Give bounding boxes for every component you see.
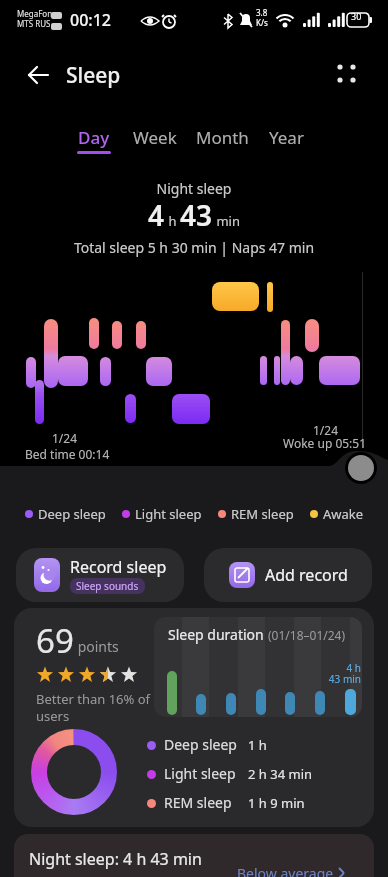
staticText: Record sleep	[70, 556, 167, 578]
staticText: 4	[148, 196, 165, 234]
staticText: Light sleep	[135, 505, 202, 523]
staticText: Night sleep	[0, 179, 388, 198]
staticText: REM sleep	[231, 505, 294, 523]
staticText: Better than 16% of users	[36, 690, 151, 725]
staticText: points	[74, 637, 119, 656]
button[interactable]: Add record	[204, 548, 372, 602]
staticText: 30	[351, 10, 362, 22]
button[interactable]: Day	[78, 126, 110, 149]
button[interactable]: Year	[269, 126, 304, 149]
button[interactable]: Week	[133, 126, 177, 149]
staticText: 69	[36, 618, 74, 663]
staticText: 3.8	[256, 7, 268, 18]
staticText: Below average	[237, 864, 334, 877]
staticText: (01/18–01/24)	[268, 627, 346, 643]
staticText: Light sleep	[164, 764, 236, 783]
staticText: MTS RUS	[17, 18, 51, 29]
staticText: K/s	[256, 17, 268, 28]
staticText: Total sleep 5 h 30 min | Naps 47 min	[0, 238, 388, 257]
button[interactable]: Night sleep: 4 h 43 min	[14, 834, 374, 877]
staticText: Sleep sounds	[76, 579, 139, 593]
staticText: 2 h 34 min	[248, 765, 313, 783]
staticText: REM sleep	[164, 793, 232, 812]
staticText: 00:12	[70, 9, 111, 31]
staticText: Deep sleep	[38, 505, 106, 523]
staticText: 1/24	[313, 422, 339, 438]
button[interactable]	[330, 58, 364, 92]
staticText: Add record	[265, 564, 348, 586]
staticText: Deep sleep	[164, 735, 237, 754]
staticText: 1 h 9 min	[248, 794, 305, 812]
button[interactable]: Record sleep	[16, 548, 184, 602]
staticText: Woke up 05:51	[283, 435, 367, 451]
staticText: 1/24	[52, 430, 78, 446]
staticText: h	[165, 212, 180, 230]
button[interactable]	[22, 58, 58, 94]
staticText: min	[213, 212, 240, 230]
staticText: Awake	[323, 505, 364, 523]
staticText: 43	[180, 196, 213, 234]
staticText: Sleep duration	[168, 625, 268, 644]
staticText: MegaFon	[17, 8, 53, 19]
button[interactable]: Month	[196, 126, 249, 149]
staticText: 4 h 43 min	[328, 661, 361, 686]
staticText: Bed time 00:14	[25, 446, 110, 462]
button[interactable]: 69	[14, 608, 374, 827]
staticText: Sleep	[66, 61, 121, 90]
staticText: Night sleep: 4 h 43 min	[29, 848, 202, 870]
staticText: 1 h	[248, 736, 267, 754]
